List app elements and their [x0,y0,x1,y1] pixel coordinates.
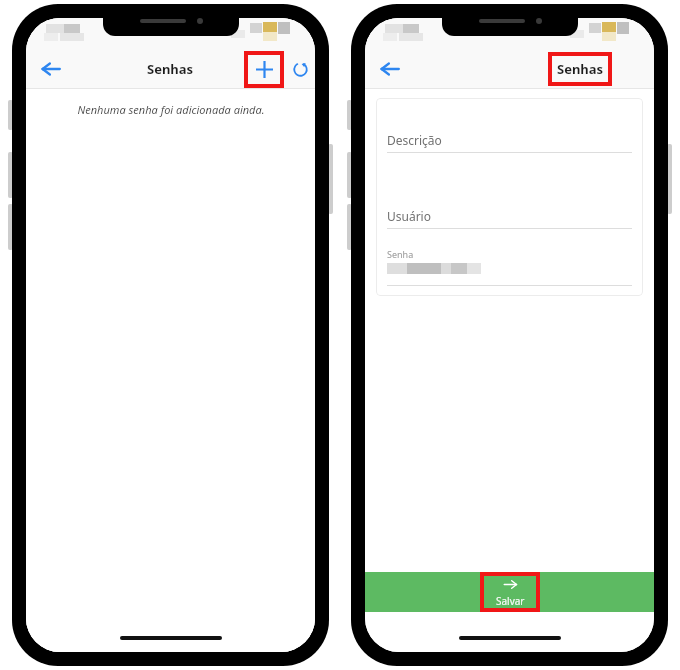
staticText: Salvar [496,594,525,608]
button[interactable]: Refresh [285,54,315,84]
staticText: Usuário [387,208,431,224]
button[interactable]: Senhas [548,52,612,86]
button[interactable]: Descrição [387,132,632,153]
staticText: Senhas [147,60,194,78]
button[interactable]: Back [373,52,407,86]
button[interactable]: Salvar [480,572,540,612]
button[interactable]: Back [34,52,68,86]
staticText: Senha [387,248,414,260]
staticText: Nenhuma senha foi adicionada ainda. [77,102,265,117]
button[interactable]: Senha [387,248,632,286]
staticText: Descrição [387,132,442,148]
button[interactable]: Usuário [387,208,632,229]
staticText: Senhas [557,60,604,78]
button[interactable]: Add password [244,51,284,88]
